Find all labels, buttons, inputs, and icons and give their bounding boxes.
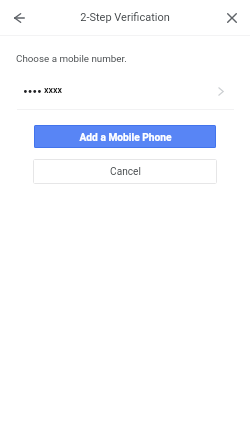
button[interactable]: Back [5, 4, 33, 32]
staticText: Add a Mobile Phone [79, 132, 172, 144]
button[interactable]: Add a Mobile Phone [34, 125, 216, 148]
button[interactable]: Cancel [33, 159, 217, 184]
button[interactable]: XXXX [0, 79, 250, 109]
staticText: XXXX [44, 85, 63, 94]
button[interactable]: Close [218, 4, 246, 32]
staticText: 2-Step Verification [0, 11, 250, 24]
staticText: Cancel [110, 166, 141, 178]
staticText: Choose a mobile number. [16, 53, 127, 64]
